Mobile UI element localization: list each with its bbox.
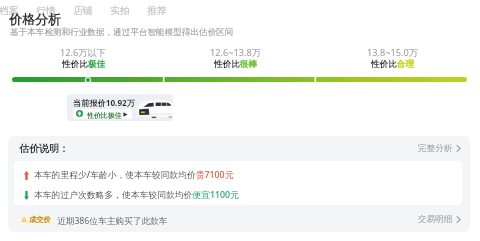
staticText: 当前报价10.92万 <box>73 97 135 108</box>
staticText: 完整分析 <box>418 143 453 154</box>
staticText: 本车的里程少/车龄小，使本车较同款均价贵7100元 <box>34 169 234 181</box>
staticText: 性价比极佳 <box>62 59 105 70</box>
button[interactable]: 当前报价10.92万 <box>67 94 173 121</box>
staticText: 12.6~13.8万 <box>210 46 261 59</box>
staticText: 行情 <box>36 5 56 17</box>
button[interactable]: 档案 <box>0 4 29 18</box>
staticText: 成交价 <box>29 215 51 224</box>
button[interactable]: 交易明细 <box>418 213 461 226</box>
staticText: 推荐 <box>147 5 167 17</box>
staticText: 交易明细 <box>418 214 453 225</box>
staticText: 性价比极佳 <box>87 111 122 119</box>
staticText: 店铺 <box>73 5 93 17</box>
staticText: 基于本车检测和行业数据，通过平台智能模型得出估价区间 <box>10 27 234 38</box>
staticText: 13.8~15.0万 <box>367 46 418 59</box>
staticText: 档案 <box>0 5 19 17</box>
staticText: 实拍 <box>110 5 130 17</box>
staticText: 近期386位车主购买了此款车 <box>57 215 168 227</box>
button[interactable]: 行情 <box>36 4 66 18</box>
button[interactable]: 完整分析 <box>418 141 461 155</box>
staticText: 12.6万以下 <box>60 46 106 59</box>
button[interactable]: 店铺 <box>73 4 103 18</box>
staticText: 本车的过户次数略多，使本车较同款均价便宜1100元 <box>34 189 239 201</box>
staticText: 性价比合理 <box>371 59 414 70</box>
staticText: 价格分析 <box>9 11 61 27</box>
button[interactable]: 推荐 <box>147 4 177 18</box>
other: Car photo <box>137 99 174 119</box>
button[interactable]: 实拍 <box>110 4 140 18</box>
staticText: 估价说明： <box>19 142 69 155</box>
staticText: 性价比很棒 <box>214 59 257 70</box>
button[interactable]: 性价比极佳 <box>73 109 132 119</box>
